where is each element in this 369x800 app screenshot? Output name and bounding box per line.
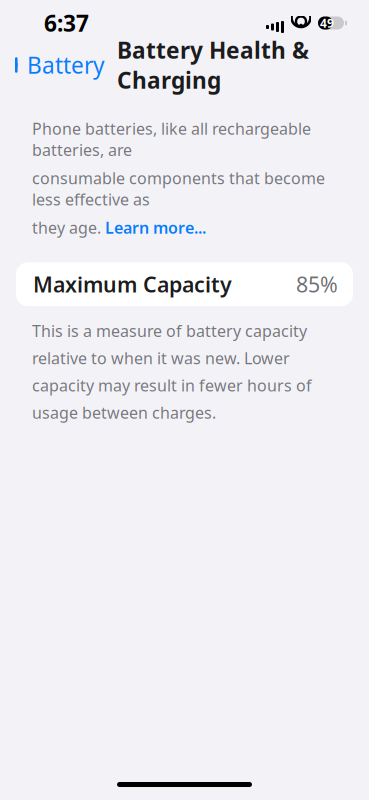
staticText: 85%: [296, 270, 338, 298]
staticText: Learn more...: [105, 217, 206, 238]
staticText: To reduce battery ageing, iPhone learns …: [32, 688, 333, 791]
staticText: Battery: [27, 50, 105, 80]
staticText: Battery Health & Charging: [117, 35, 309, 95]
button[interactable]: Maximum Capacity: [16, 262, 353, 306]
staticText: consumable components that become less e…: [32, 167, 325, 210]
staticText: they age.: [32, 217, 105, 238]
button[interactable]: Battery: [0, 44, 105, 86]
staticText: 6:37: [44, 8, 89, 38]
staticText: 49: [320, 15, 334, 31]
staticText: Phone batteries, like all rechargeable b…: [32, 118, 311, 160]
staticText: Maximum Capacity: [33, 270, 232, 298]
staticText: This is a measure of battery capacity re…: [32, 320, 312, 423]
button[interactable]: Learn more...: [105, 217, 206, 238]
